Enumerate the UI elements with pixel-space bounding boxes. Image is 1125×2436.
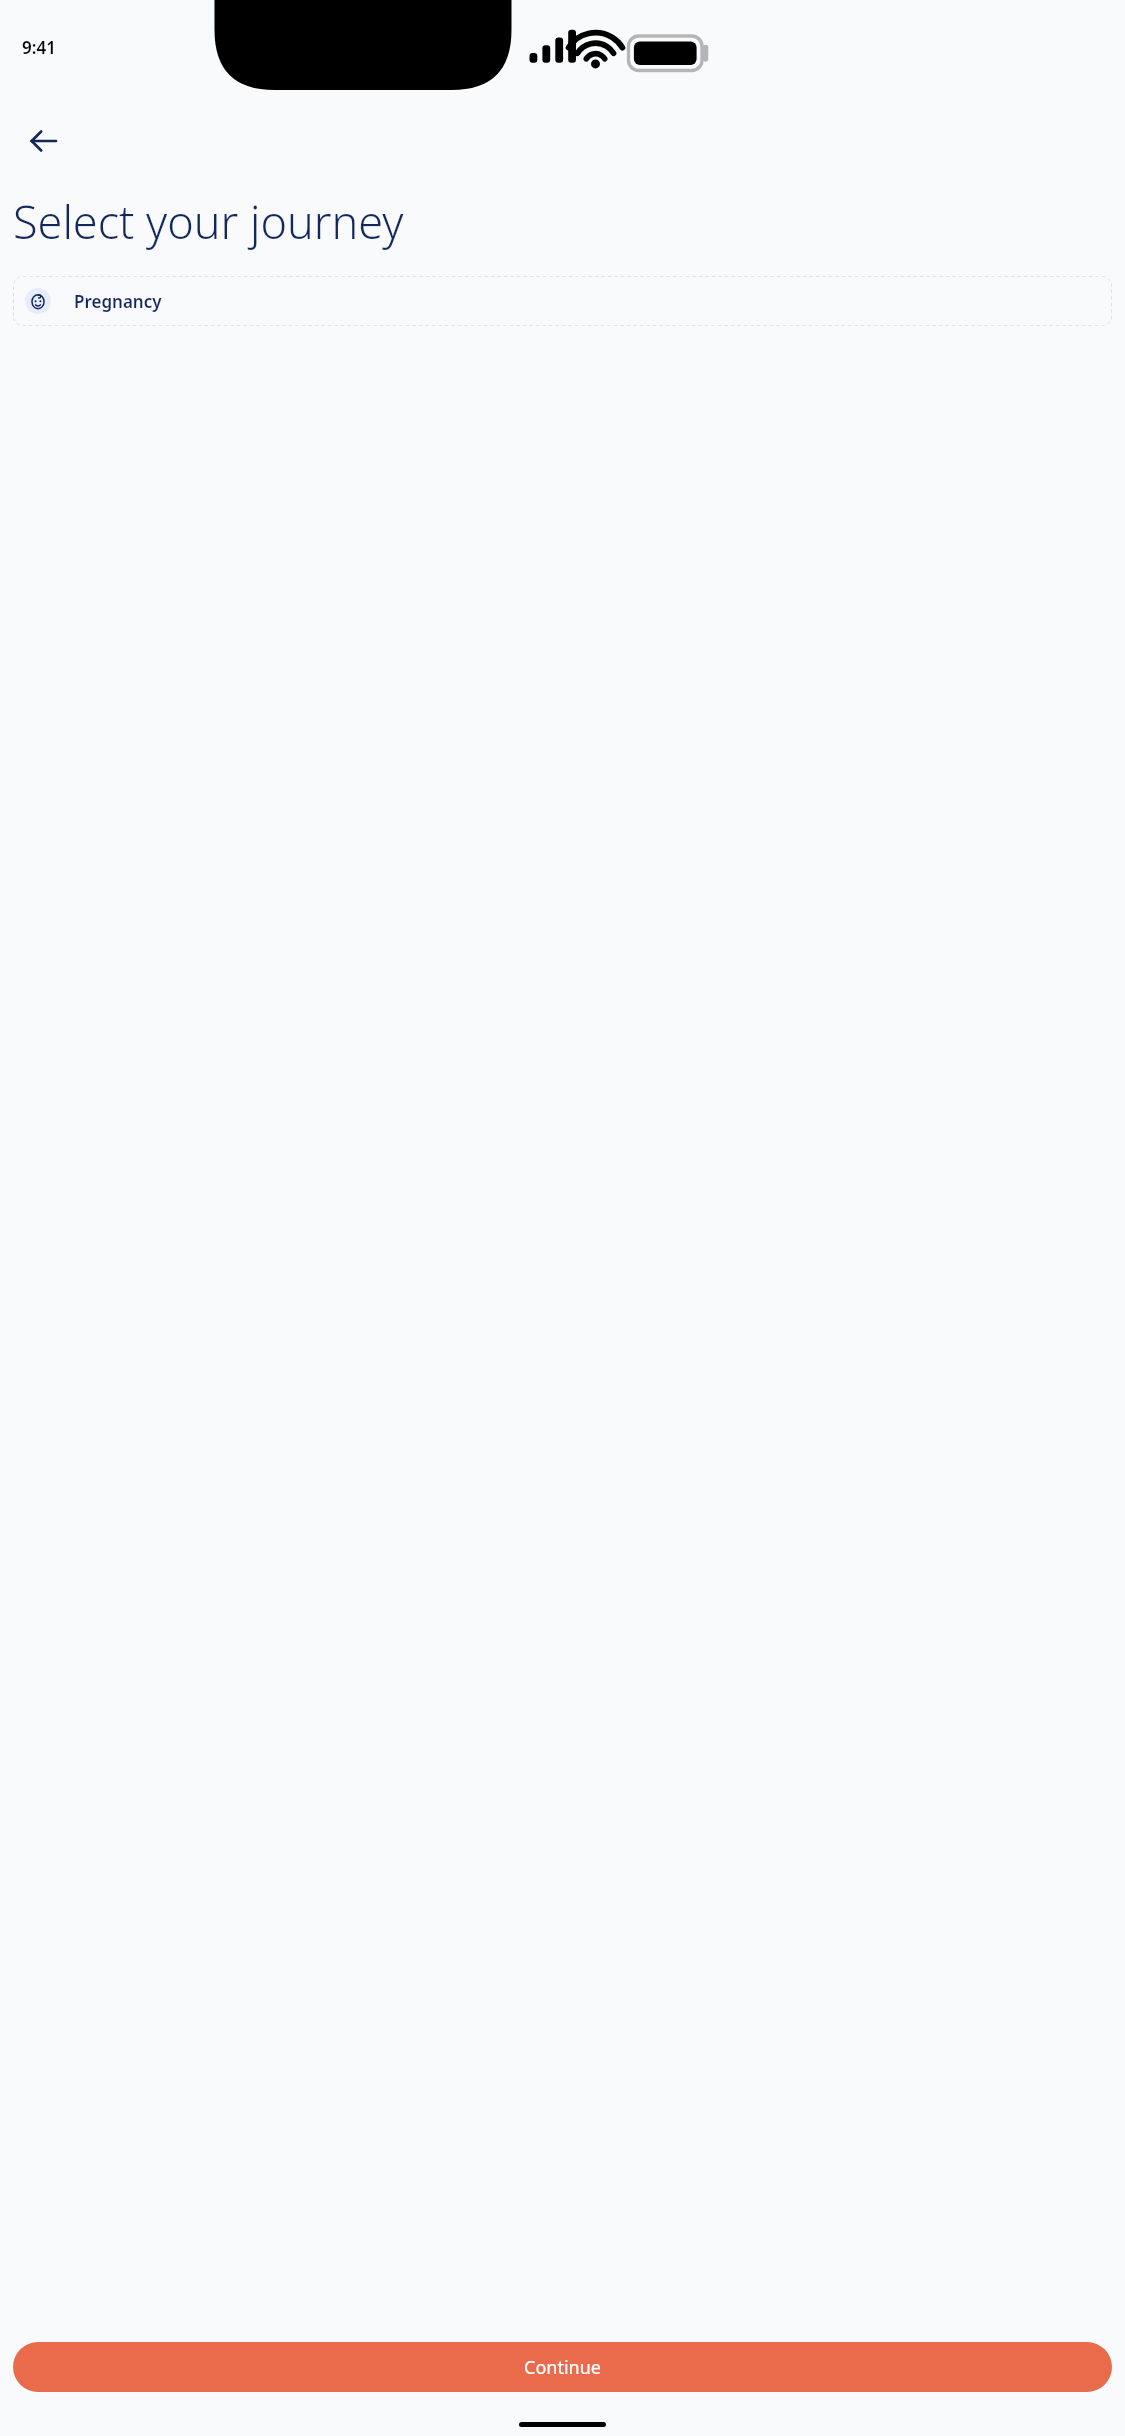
button[interactable]: Pregnancy xyxy=(13,276,1112,326)
staticText: Continue xyxy=(524,2355,601,2380)
staticText: Select your journey xyxy=(13,191,1125,252)
staticText: Pregnancy xyxy=(74,290,162,313)
button[interactable]: Continue xyxy=(13,2342,1112,2392)
staticText: 9:41 xyxy=(22,36,56,59)
button[interactable]: Back xyxy=(20,117,68,165)
